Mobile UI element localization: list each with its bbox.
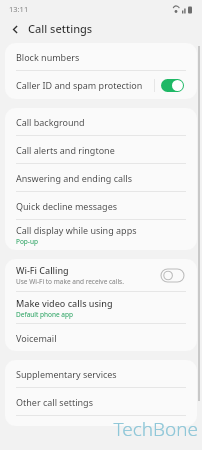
- staticText: Call alerts and ringtone: [16, 144, 115, 156]
- staticText: Pop-up: [16, 237, 38, 246]
- button[interactable]: Call alerts and ringtone: [5, 136, 197, 163]
- staticText: Block numbers: [16, 51, 80, 63]
- button[interactable]: Wi-Fi Calling: [5, 259, 197, 291]
- staticText: Wi-Fi Calling: [16, 264, 69, 276]
- staticText: Use Wi-Fi to make and receive calls.: [16, 277, 124, 286]
- staticText: Answering and ending calls: [16, 172, 132, 184]
- button[interactable]: Block numbers: [5, 43, 197, 70]
- staticText: Voicemail: [16, 332, 57, 344]
- button[interactable]: Make video calls using: [5, 292, 197, 323]
- staticText: Supplementary services: [16, 368, 117, 380]
- staticText: Call settings: [28, 21, 93, 36]
- button[interactable]: Call display while using apps: [5, 220, 197, 250]
- staticText: 13:11: [9, 4, 29, 14]
- button[interactable]: Supplementary services: [5, 360, 197, 387]
- button[interactable]: Answering and ending calls: [5, 164, 197, 191]
- button[interactable]: Back: [7, 21, 23, 37]
- button[interactable]: Toggle on: [155, 73, 189, 97]
- button[interactable]: Voicemail: [5, 324, 197, 351]
- staticText: TechBone: [113, 416, 198, 442]
- button[interactable]: Toggle off: [155, 263, 189, 287]
- staticText: Call display while using apps: [16, 224, 137, 236]
- staticText: Make video calls using: [16, 297, 113, 309]
- button[interactable]: Other call settings: [5, 388, 197, 415]
- button[interactable]: Quick decline messages: [5, 192, 197, 219]
- button[interactable]: Call background: [5, 108, 197, 135]
- staticText: Caller ID and spam protection: [16, 79, 143, 91]
- staticText: Other call settings: [16, 396, 93, 408]
- staticText: Quick decline messages: [16, 200, 118, 212]
- button[interactable]: Caller ID and spam protection: [5, 71, 197, 99]
- staticText: Default phone app: [16, 310, 73, 319]
- staticText: Call background: [16, 116, 85, 128]
